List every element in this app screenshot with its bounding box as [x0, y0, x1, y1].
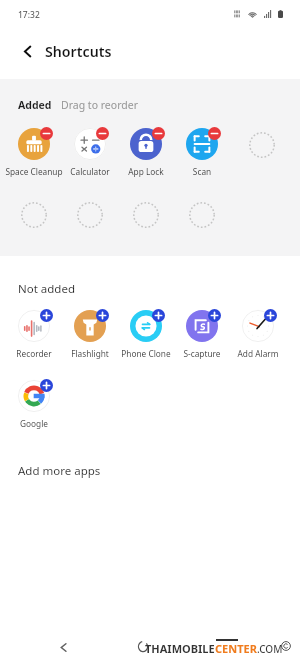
- button[interactable]: App Lock: [111, 124, 181, 177]
- button[interactable]: S-capture: [167, 306, 237, 359]
- staticText: Shortcuts: [45, 42, 112, 61]
- staticText: Phone Clone: [111, 348, 181, 359]
- button[interactable]: Back: [44, 628, 82, 666]
- staticText: S-capture: [167, 348, 237, 359]
- staticText: Not added: [18, 281, 75, 297]
- staticText: Calculator: [55, 166, 125, 177]
- button[interactable]: Back: [8, 32, 46, 70]
- staticText: App Lock: [111, 166, 181, 177]
- staticText: THAIMOBILE: [145, 641, 215, 656]
- button[interactable]: Google: [0, 376, 69, 429]
- button[interactable]: Phone Clone: [111, 306, 181, 359]
- button[interactable]: Add more apps: [18, 463, 101, 479]
- button[interactable]: Scan: [167, 124, 237, 177]
- staticText: Add Alarm: [223, 348, 293, 359]
- staticText: .COM: [257, 642, 283, 656]
- staticText: CENTER: [215, 641, 257, 656]
- button[interactable]: Calculator: [55, 124, 125, 177]
- button[interactable]: Recorder: [0, 306, 69, 359]
- button[interactable]: Flashlight: [55, 306, 125, 359]
- button[interactable]: Space Cleanup: [0, 124, 69, 177]
- staticText: Flashlight: [55, 348, 125, 359]
- staticText: Drag to reorder: [61, 98, 138, 112]
- staticText: Scan: [167, 166, 237, 177]
- staticText: Google: [0, 418, 69, 429]
- staticText: Recorder: [0, 348, 69, 359]
- staticText: 17:32: [18, 9, 40, 21]
- staticText: Added: [18, 98, 52, 112]
- button[interactable]: Add Alarm: [223, 306, 293, 359]
- staticText: Space Cleanup: [0, 166, 69, 177]
